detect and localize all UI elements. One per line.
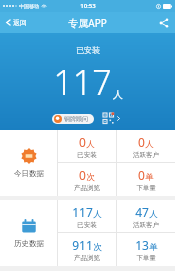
staticText: 0	[138, 134, 145, 150]
staticText: 下单量	[136, 254, 156, 262]
button[interactable]: 47	[117, 200, 175, 232]
button[interactable]: Share	[153, 14, 175, 32]
staticText: 人	[145, 139, 154, 150]
button[interactable]: QR code	[101, 111, 123, 126]
staticText: 单	[149, 242, 158, 253]
staticText: 已安装	[76, 45, 100, 55]
staticText: 历史数据	[14, 239, 44, 248]
button[interactable]: 0	[117, 130, 175, 162]
staticText: 0	[138, 167, 145, 183]
staticText: 已安装	[77, 151, 97, 159]
staticText: 人	[149, 209, 158, 220]
staticText: 人	[113, 88, 123, 101]
staticText: 次	[93, 242, 102, 253]
staticText: 下单量	[136, 184, 156, 192]
button[interactable]: 返回	[0, 15, 32, 30]
staticText: 0	[79, 167, 86, 183]
staticText: 13	[135, 237, 149, 253]
button[interactable]: 117	[58, 200, 116, 232]
staticText: 单	[145, 172, 154, 183]
button[interactable]: 今日数据	[0, 130, 57, 196]
staticText: 911	[72, 237, 93, 253]
button[interactable]: 铜牌顾问	[52, 114, 94, 124]
button[interactable]: 历史数据	[0, 200, 57, 266]
staticText: 47	[135, 204, 149, 220]
staticText: 铜牌顾问	[64, 115, 88, 123]
staticText: 人	[93, 209, 102, 220]
staticText: 产品浏览	[74, 184, 100, 192]
staticText: 活跃客户	[133, 151, 159, 159]
staticText: 中国移动	[19, 3, 39, 9]
button[interactable]: 0	[58, 163, 116, 196]
button[interactable]: 13	[117, 233, 175, 266]
staticText: 产品浏览	[74, 254, 100, 262]
staticText: 返回	[13, 18, 27, 27]
staticText: 次	[86, 172, 95, 183]
staticText: 专属APP	[68, 16, 107, 30]
staticText: 0	[79, 134, 86, 150]
button[interactable]: 0	[58, 130, 116, 162]
staticText: 人	[86, 139, 95, 150]
staticText: 10:53	[80, 2, 96, 10]
staticText: 117	[53, 59, 112, 105]
button[interactable]: 911	[58, 233, 116, 266]
staticText: 117	[72, 204, 93, 220]
button[interactable]: 0	[117, 163, 175, 196]
staticText: 活跃客户	[133, 221, 159, 229]
staticText: 已安装	[77, 221, 97, 229]
staticText: 今日数据	[14, 169, 44, 178]
